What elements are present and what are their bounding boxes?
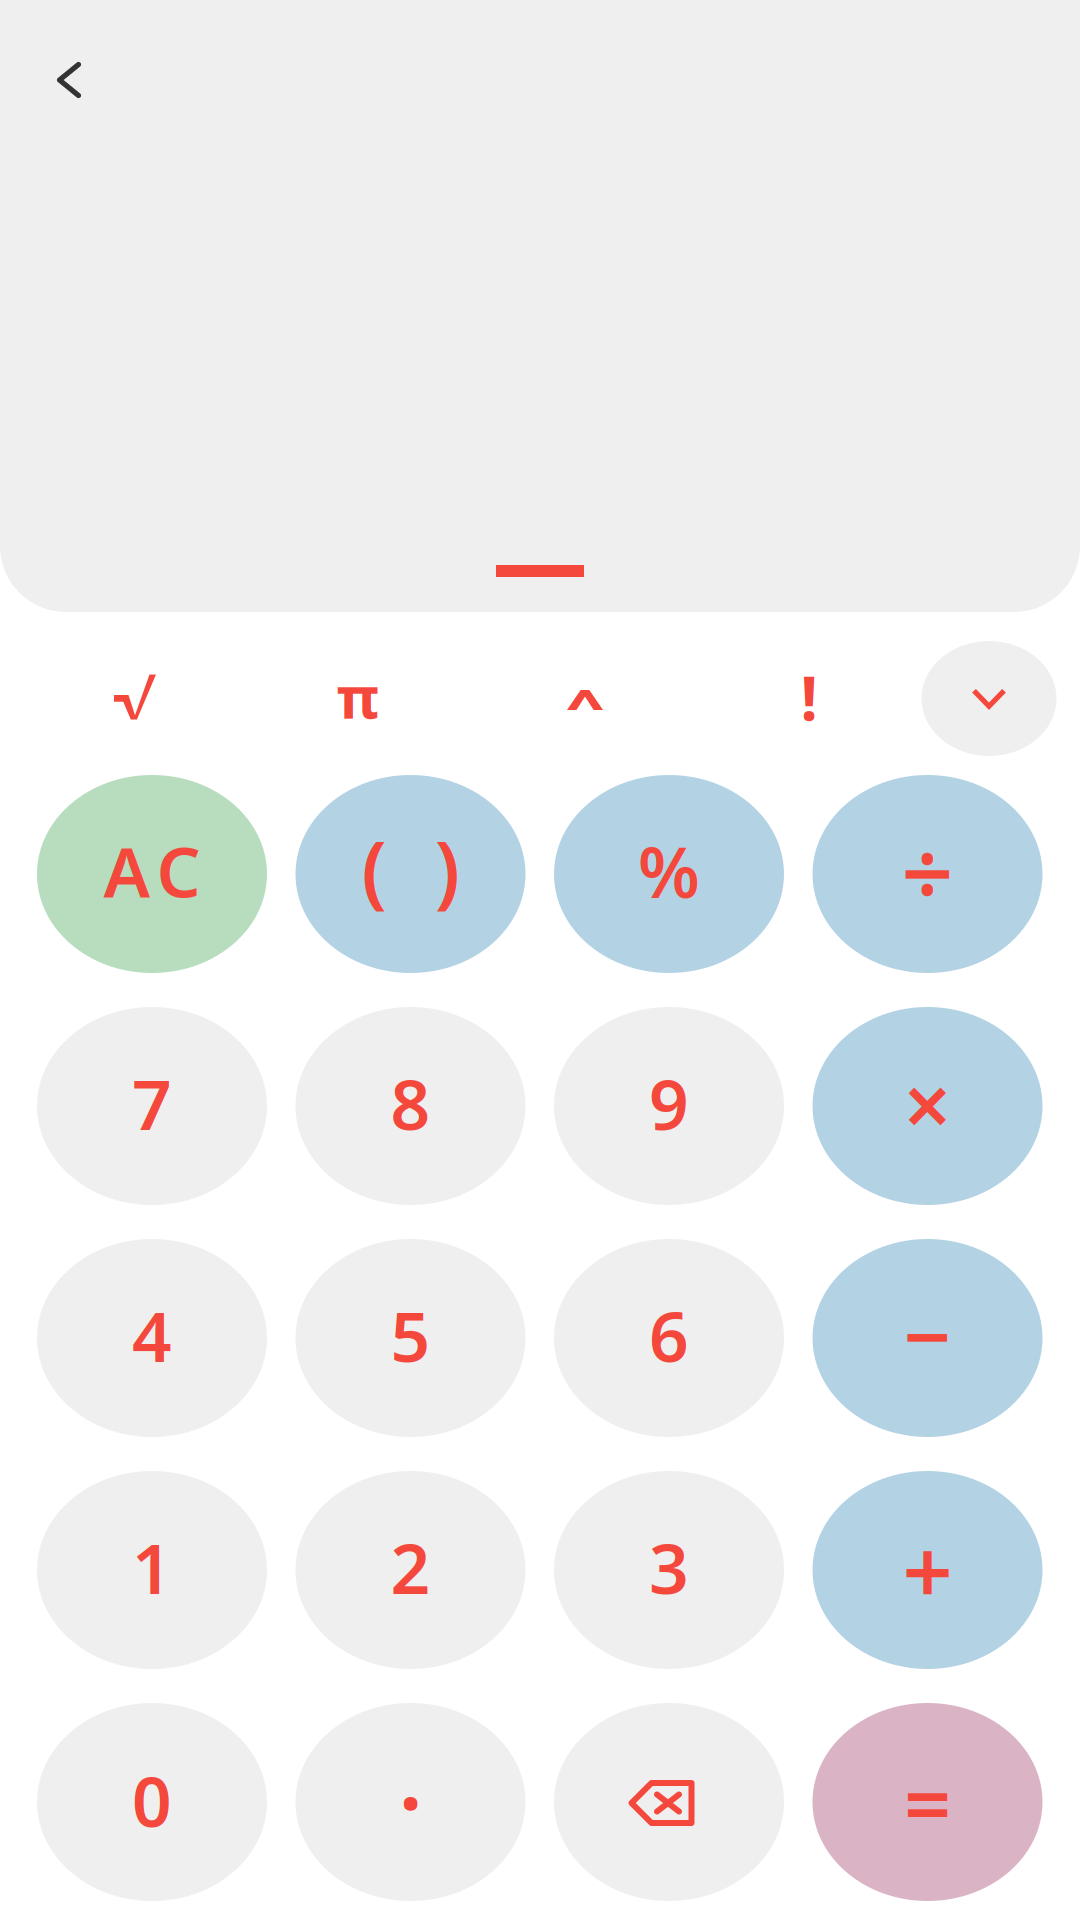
button[interactable]: AC bbox=[37, 775, 267, 973]
staticText: × bbox=[903, 1048, 951, 1160]
button[interactable]: · bbox=[295, 1703, 525, 1901]
staticText: 6 bbox=[649, 1289, 689, 1381]
button[interactable]: 4 bbox=[37, 1239, 267, 1437]
staticText: 9 bbox=[649, 1057, 689, 1149]
staticText: 1 bbox=[132, 1521, 172, 1613]
button[interactable]: 0 bbox=[37, 1703, 267, 1901]
staticText: π bbox=[336, 658, 379, 734]
button[interactable]: Exponent bbox=[510, 625, 660, 775]
button[interactable]: % bbox=[554, 775, 784, 973]
button[interactable]: Back bbox=[14, 25, 124, 135]
staticText: ÷ bbox=[901, 811, 953, 931]
staticText: = bbox=[904, 1747, 951, 1857]
staticText: AC bbox=[103, 824, 200, 917]
button[interactable]: × bbox=[812, 1007, 1042, 1205]
button[interactable]: 2 bbox=[295, 1471, 525, 1669]
staticText: % bbox=[638, 824, 700, 917]
button[interactable]: 7 bbox=[37, 1007, 267, 1205]
staticText: 3 bbox=[649, 1521, 689, 1613]
button[interactable]: = bbox=[812, 1703, 1042, 1901]
staticText: + bbox=[902, 1512, 952, 1628]
button[interactable]: Delete bbox=[554, 1703, 784, 1901]
button[interactable]: ! bbox=[734, 622, 884, 772]
staticText: · bbox=[398, 1743, 422, 1860]
button[interactable]: 5 bbox=[295, 1239, 525, 1437]
button[interactable]: ( ) bbox=[295, 775, 525, 973]
button[interactable]: 8 bbox=[295, 1007, 525, 1205]
staticText: 8 bbox=[390, 1057, 430, 1149]
staticText: 5 bbox=[390, 1289, 430, 1381]
button[interactable]: 1 bbox=[37, 1471, 267, 1669]
staticText: − bbox=[903, 1280, 951, 1390]
staticText: 7 bbox=[132, 1057, 172, 1149]
staticText: 2 bbox=[390, 1521, 430, 1613]
button[interactable]: − bbox=[812, 1239, 1042, 1437]
button[interactable]: + bbox=[812, 1471, 1042, 1669]
button[interactable]: Square root bbox=[60, 622, 210, 772]
staticText: ( ) bbox=[361, 816, 459, 920]
button[interactable]: 9 bbox=[554, 1007, 784, 1205]
button[interactable]: 6 bbox=[554, 1239, 784, 1437]
button[interactable]: ÷ bbox=[812, 775, 1042, 973]
button[interactable]: More functions bbox=[921, 641, 1056, 756]
staticText: 4 bbox=[132, 1289, 172, 1381]
staticText: ! bbox=[800, 656, 817, 738]
button[interactable]: π bbox=[283, 621, 433, 771]
button[interactable]: 3 bbox=[554, 1471, 784, 1669]
staticText: 0 bbox=[132, 1754, 172, 1846]
